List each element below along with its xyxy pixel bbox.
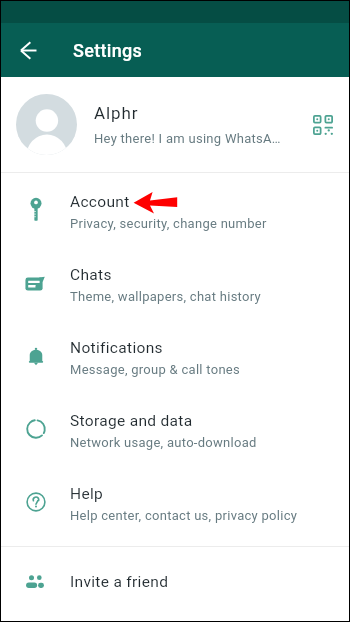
staticText: Message, group & call tones: [70, 362, 241, 377]
button[interactable]: Alphr: [1, 77, 349, 172]
staticText: Help center, contact us, privacy policy: [70, 508, 298, 523]
staticText: Help: [70, 485, 104, 503]
button[interactable]: Help: [1, 465, 349, 538]
staticText: Settings: [73, 40, 143, 61]
staticText: Network usage, auto-download: [70, 435, 257, 450]
staticText: Theme, wallpapers, chat history: [70, 289, 261, 304]
staticText: Privacy, security, change number: [70, 216, 267, 231]
button[interactable]: Notifications: [1, 319, 349, 392]
staticText: Hey there! I am using WhatsA…: [94, 131, 281, 146]
staticText: Notifications: [70, 339, 163, 357]
staticText: Alphr: [94, 103, 139, 123]
staticText: Chats: [70, 266, 112, 284]
button[interactable]: Invite a friend: [1, 547, 349, 616]
staticText: Invite a friend: [70, 573, 169, 591]
button[interactable]: QR code: [305, 107, 341, 143]
staticText: Storage and data: [70, 412, 193, 430]
button[interactable]: Storage and data: [1, 392, 349, 465]
button[interactable]: Chats: [1, 246, 349, 319]
button[interactable]: Back: [6, 28, 50, 72]
staticText: Account: [70, 193, 130, 211]
button[interactable]: Account: [1, 173, 349, 246]
